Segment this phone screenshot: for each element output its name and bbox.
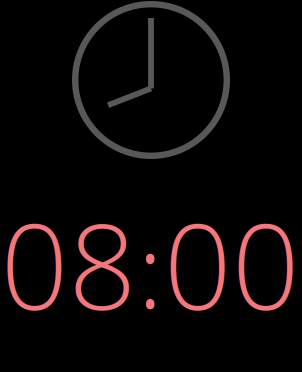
staticText: 00 [164,183,300,345]
staticText: 08 [0,183,136,345]
